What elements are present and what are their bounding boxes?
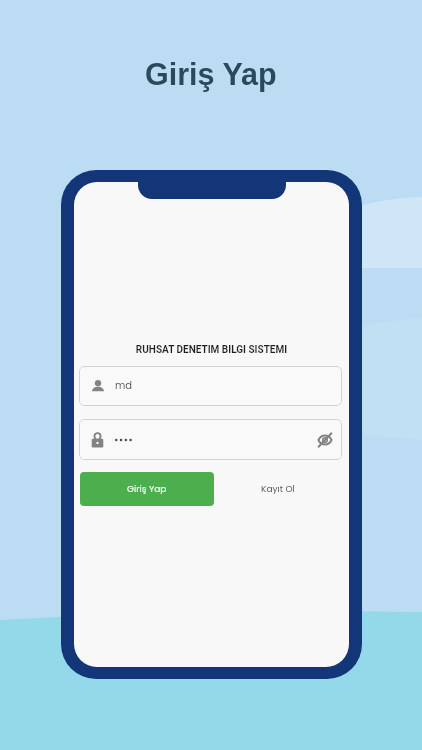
button[interactable]: Şifreyi göster <box>314 429 336 451</box>
staticText: Giriş Yap <box>127 483 167 496</box>
button[interactable]: Şifreyi göster <box>79 419 342 460</box>
staticText: Giriş Yap <box>145 57 277 91</box>
staticText: RUHSAT DENETIM BILGI SISTEMI <box>74 344 349 356</box>
button[interactable]: Giriş Yap <box>80 472 214 506</box>
staticText: md <box>115 378 133 392</box>
staticText: Kayıt Ol <box>261 483 295 496</box>
button[interactable]: md <box>79 366 342 406</box>
button[interactable]: Kayıt Ol <box>247 472 308 506</box>
